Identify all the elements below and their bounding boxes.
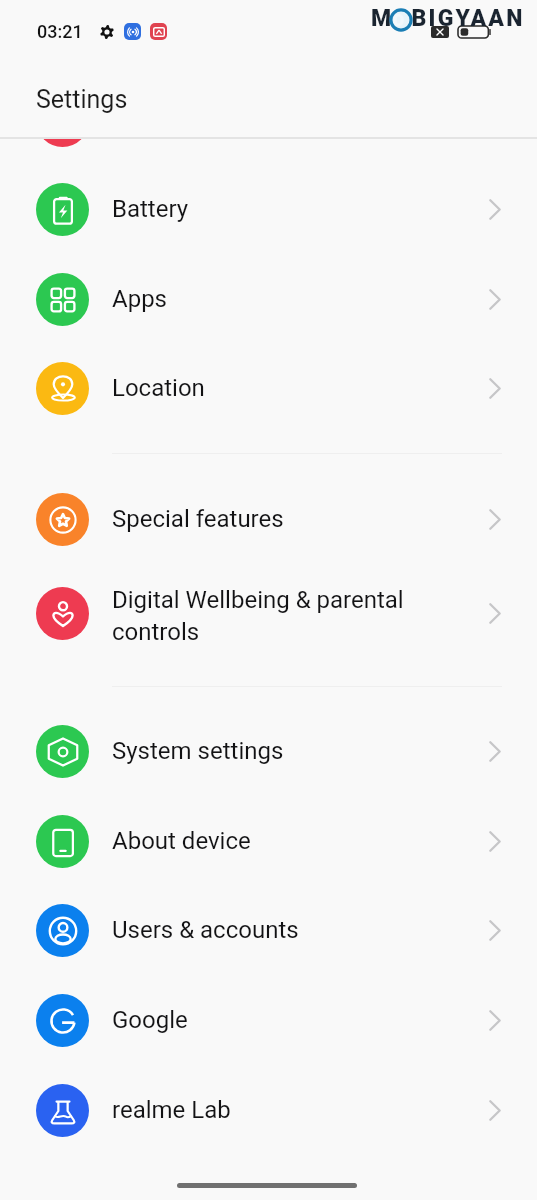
button[interactable]: Google: [0, 975, 537, 1065]
staticText: 03:21: [37, 21, 83, 42]
staticText: Battery: [112, 195, 481, 223]
staticText: O: [393, 11, 405, 30]
staticText: realme Lab: [112, 1096, 481, 1124]
button[interactable]: Special features: [0, 474, 537, 564]
button[interactable]: Battery: [0, 164, 537, 254]
staticText: About device: [112, 827, 481, 855]
staticText: Settings: [36, 85, 128, 114]
button[interactable]: About device: [0, 796, 537, 886]
button[interactable]: realme Lab: [0, 1065, 537, 1155]
button[interactable]: Apps: [0, 254, 537, 344]
staticText: MOBIGYAAN: [371, 5, 525, 32]
button[interactable]: Location: [0, 343, 537, 433]
staticText: Apps: [112, 285, 481, 313]
button[interactable]: Digital Wellbeing & parental controls: [0, 568, 537, 658]
button[interactable]: Users & accounts: [0, 885, 537, 975]
staticText: Google: [112, 1006, 481, 1034]
button[interactable]: System settings: [0, 706, 537, 796]
staticText: Location: [112, 374, 481, 402]
staticText: System settings: [112, 737, 481, 765]
staticText: Digital Wellbeing & parental controls: [112, 586, 481, 646]
staticText: Special features: [112, 505, 481, 533]
staticText: Users & accounts: [112, 916, 481, 944]
